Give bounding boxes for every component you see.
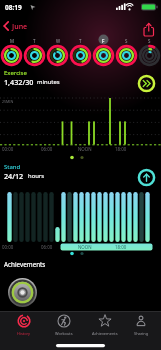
button[interactable]: Workouts: [45, 312, 83, 342]
button[interactable]: History: [5, 312, 43, 342]
staticText: Achievements: [92, 331, 118, 336]
staticText: hours: [28, 172, 45, 180]
staticText: 18:00: [115, 244, 127, 250]
staticText: 00:00: [2, 244, 14, 250]
staticText: Stand: [4, 163, 21, 171]
staticText: 24/12: [4, 171, 24, 181]
staticText: Exercise: [4, 69, 27, 77]
staticText: minutes: [37, 78, 60, 86]
staticText: F: [102, 38, 105, 44]
button[interactable]: June: [0, 17, 44, 35]
button[interactable]: Exercise: [0, 68, 161, 94]
staticText: M: [10, 38, 14, 44]
staticText: 25MIN: [2, 99, 14, 104]
staticText: S: [125, 38, 128, 44]
staticText: S: [148, 38, 151, 44]
button[interactable]: Sharing: [122, 312, 160, 342]
staticText: History: [17, 331, 31, 336]
staticText: 06:00: [41, 146, 53, 152]
staticText: 00:00: [2, 146, 14, 152]
staticText: June: [12, 22, 28, 32]
staticText: Sharing: [134, 331, 149, 336]
button[interactable]: [141, 22, 157, 38]
button[interactable]: Stand: [0, 162, 161, 190]
staticText: NOON: [78, 146, 92, 152]
staticText: T: [79, 38, 82, 44]
staticText: Achievements: [4, 260, 46, 269]
staticText: 08:19: [5, 3, 22, 12]
staticText: W: [56, 38, 61, 44]
staticText: T: [33, 38, 36, 44]
button[interactable]: Achievements: [86, 312, 124, 342]
staticText: 18:00: [115, 146, 127, 152]
staticText: NOON: [78, 244, 92, 250]
staticText: 1,432/30: [4, 77, 34, 87]
button[interactable]: Achievements: [0, 258, 161, 308]
staticText: 06:00: [41, 244, 53, 250]
staticText: Workouts: [55, 331, 73, 336]
